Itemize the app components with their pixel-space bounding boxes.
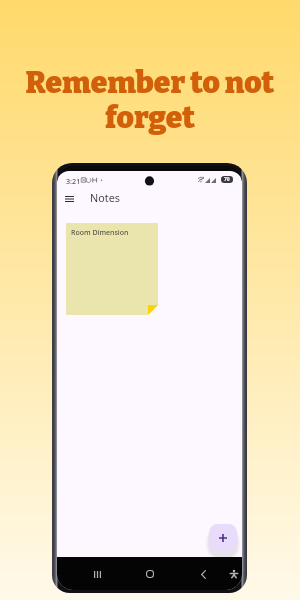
staticText: Room Dimension bbox=[71, 228, 129, 238]
button[interactable]: Room Dimension bbox=[66, 223, 158, 315]
button[interactable]: Home bbox=[137, 557, 163, 590]
button[interactable]: Open navigation menu bbox=[60, 189, 79, 208]
staticText: Remember to not forget bbox=[0, 65, 300, 136]
button[interactable]: Accessibility bbox=[221, 557, 242, 590]
button[interactable]: Add note bbox=[209, 524, 237, 551]
staticText: Notes bbox=[90, 190, 120, 205]
button[interactable]: Recents bbox=[84, 557, 110, 590]
staticText: 70 bbox=[224, 176, 230, 183]
staticText: 3:21 bbox=[66, 176, 81, 186]
button[interactable]: Back bbox=[190, 557, 216, 590]
